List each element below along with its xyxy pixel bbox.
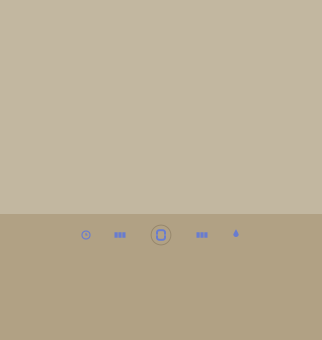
button[interactable]: Capture — [144, 218, 178, 252]
button[interactable]: Library — [103, 218, 137, 252]
button[interactable]: Recents — [69, 218, 103, 252]
button[interactable]: Browse — [185, 218, 219, 252]
button[interactable]: Profile — [219, 218, 253, 252]
